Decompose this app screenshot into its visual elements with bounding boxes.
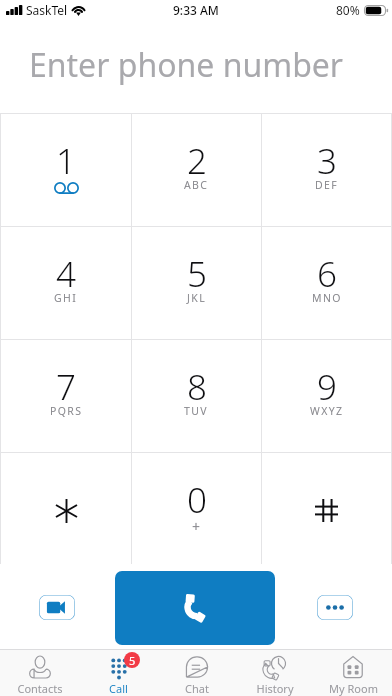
staticText: 2: [187, 137, 207, 185]
button[interactable]: 2: [132, 114, 261, 226]
button[interactable]: 0: [132, 453, 261, 564]
staticText: 1: [56, 137, 76, 185]
staticText: 9:33 AM: [173, 2, 219, 18]
staticText: +: [192, 517, 201, 536]
staticText: 0: [187, 476, 207, 524]
button[interactable]: 5: [132, 227, 261, 339]
staticText: SaskTel: [26, 2, 68, 18]
staticText: Contacts: [17, 681, 63, 696]
staticText: DEF: [315, 178, 339, 192]
staticText: Call: [109, 681, 128, 696]
staticText: JKL: [187, 291, 207, 305]
button[interactable]: 3: [262, 114, 391, 226]
button[interactable]: [262, 453, 391, 564]
button[interactable]: Chat: [158, 650, 236, 696]
staticText: TUV: [184, 404, 209, 418]
staticText: 9: [317, 363, 337, 411]
button[interactable]: 4: [1, 227, 131, 339]
button[interactable]: My Room: [314, 650, 392, 696]
staticText: PQRS: [50, 404, 83, 418]
staticText: 3: [317, 137, 337, 185]
button[interactable]: 5: [79, 650, 158, 696]
staticText: My Room: [329, 681, 378, 696]
staticText: Chat: [185, 681, 209, 696]
button[interactable]: Call: [115, 571, 275, 645]
staticText: 5: [187, 250, 207, 298]
staticText: 4: [56, 250, 76, 298]
button[interactable]: More options: [317, 595, 353, 620]
staticText: ABC: [184, 178, 209, 192]
button[interactable]: 6: [262, 227, 391, 339]
staticText: 8: [187, 363, 207, 411]
button[interactable]: History: [236, 650, 314, 696]
staticText: 80%: [336, 2, 360, 18]
staticText: 7: [56, 363, 76, 411]
staticText: 5: [129, 653, 136, 668]
staticText: MNO: [312, 291, 342, 305]
staticText: 6: [317, 250, 337, 298]
button[interactable]: 9: [262, 340, 391, 452]
button[interactable]: [1, 453, 131, 564]
staticText: Enter phone number: [29, 43, 344, 87]
button[interactable]: 1: [1, 114, 131, 226]
button[interactable]: Contacts: [0, 650, 79, 696]
button[interactable]: 7: [1, 340, 131, 452]
staticText: WXYZ: [310, 404, 344, 418]
button[interactable]: 8: [132, 340, 261, 452]
staticText: GHI: [54, 291, 78, 305]
staticText: History: [256, 681, 294, 696]
button[interactable]: Video call: [39, 595, 75, 620]
